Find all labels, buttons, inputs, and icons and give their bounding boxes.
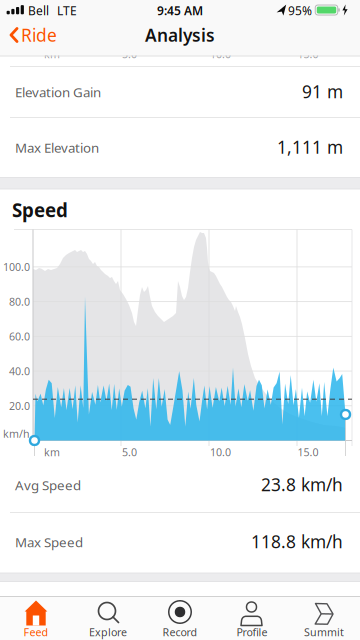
staticText: 118.8 km/h: [251, 530, 343, 553]
staticText: Feed: [23, 625, 48, 639]
staticText: Summit: [304, 625, 344, 639]
staticText: 1,111 m: [277, 135, 343, 158]
staticText: Profile: [236, 625, 267, 639]
staticText: Bell: [28, 2, 49, 18]
staticText: 15.0: [297, 445, 318, 459]
staticText: Speed: [12, 198, 68, 222]
staticText: 5.0: [122, 445, 137, 459]
staticText: Elevation Gain: [15, 83, 101, 101]
staticText: km: [44, 47, 60, 61]
staticText: 9:45 AM: [157, 2, 203, 18]
staticText: km: [44, 445, 60, 459]
staticText: Max Elevation: [15, 139, 99, 156]
staticText: Explore: [89, 625, 127, 639]
button[interactable]: Summit: [288, 597, 360, 640]
staticText: 60.0: [9, 329, 30, 343]
staticText: 5.0: [122, 47, 137, 61]
staticText: 23.8 km/h: [261, 473, 343, 496]
staticText: 20.0: [9, 399, 30, 413]
staticText: 80.0: [9, 294, 30, 309]
staticText: 100.0: [3, 260, 30, 274]
staticText: 40.0: [9, 364, 30, 378]
button[interactable]: Feed: [0, 597, 72, 640]
staticText: LTE: [57, 2, 77, 18]
staticText: 10.0: [210, 47, 231, 61]
staticText: 15.0: [297, 47, 318, 61]
staticText: km/h: [3, 426, 30, 441]
button[interactable]: Explore: [72, 597, 144, 640]
staticText: Analysis: [145, 23, 215, 46]
staticText: Record: [162, 625, 197, 639]
staticText: 10.0: [210, 445, 231, 459]
staticText: 95%: [288, 2, 312, 18]
staticText: Avg Speed: [15, 476, 81, 494]
staticText: Ride: [21, 23, 57, 46]
button[interactable]: Profile: [216, 597, 288, 640]
button[interactable]: Record: [144, 597, 216, 640]
staticText: Max Speed: [15, 533, 83, 551]
button[interactable]: Ride: [8, 21, 88, 48]
staticText: 91 m: [302, 80, 343, 103]
